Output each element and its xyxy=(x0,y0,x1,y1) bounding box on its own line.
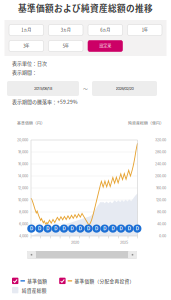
staticText: 2020 xyxy=(71,240,79,245)
staticText: 4,000 xyxy=(19,234,28,238)
staticText: 1年 xyxy=(142,27,148,33)
button[interactable]: 2015/06/18 xyxy=(7,81,79,96)
staticText: 表示単位：日次 xyxy=(12,59,47,67)
staticText: D xyxy=(46,226,49,231)
staticText: 14,000 xyxy=(18,174,28,178)
staticText: 3ヵ月 xyxy=(61,27,71,33)
button[interactable]: 1ヵ月 xyxy=(9,24,43,35)
button[interactable]: 3年 xyxy=(9,40,43,51)
staticText: 10,000 xyxy=(18,198,28,202)
staticText: 0.00 xyxy=(159,234,166,238)
button[interactable]: 基準価額 xyxy=(12,277,47,284)
staticText: 240.00 xyxy=(155,162,166,166)
staticText: 120.00 xyxy=(156,198,166,202)
staticText: D xyxy=(62,226,65,231)
staticText: 基準価額 xyxy=(27,277,47,284)
button[interactable]: Range start xyxy=(27,251,36,258)
staticText: 純資産総額 xyxy=(22,287,47,294)
staticText: 基準価額および純資産総額の推移 xyxy=(18,2,153,14)
staticText: 表示期間： xyxy=(12,68,37,76)
staticText: 5年 xyxy=(63,43,69,49)
button[interactable]: 1年 xyxy=(127,24,162,35)
button[interactable]: 5年 xyxy=(48,40,83,51)
staticText: 320.00 xyxy=(155,138,166,142)
staticText: 200.00 xyxy=(155,174,166,178)
staticText: D xyxy=(103,226,106,231)
staticText: D xyxy=(79,226,82,231)
staticText: 2026/02/20 xyxy=(115,86,133,91)
staticText: 基準価額（分配金再投資） xyxy=(74,277,134,284)
staticText: D xyxy=(30,226,33,231)
button[interactable]: 2026/02/20 xyxy=(92,81,157,96)
staticText: 6,000 xyxy=(19,222,28,226)
staticText: 3年 xyxy=(23,43,29,49)
button[interactable]: 6ヵ月 xyxy=(88,24,122,35)
staticText: D xyxy=(128,226,131,231)
staticText: 純資産総額（億円） xyxy=(128,120,164,126)
staticText: 16,000 xyxy=(18,162,28,166)
staticText: D xyxy=(136,226,139,231)
staticText: D xyxy=(111,226,114,231)
staticText: 6ヵ月 xyxy=(100,27,110,33)
staticText: 表示期間の騰落率：+59.29% xyxy=(12,98,78,105)
staticText: D xyxy=(54,226,57,231)
staticText: 8,000 xyxy=(19,210,28,214)
staticText: 12,000 xyxy=(18,186,28,190)
staticText: 40.00 xyxy=(157,222,166,226)
staticText: D xyxy=(38,226,41,231)
staticText: 設定来 xyxy=(99,43,111,49)
staticText: D xyxy=(119,226,122,231)
staticText: D xyxy=(95,226,98,231)
staticText: 80.00 xyxy=(157,210,166,214)
staticText: D xyxy=(87,226,90,231)
button[interactable]: 純資産総額 xyxy=(12,287,47,294)
staticText: 1ヵ月 xyxy=(21,27,31,33)
button[interactable]: 基準価額（分配金再投資） xyxy=(59,277,134,284)
staticText: 2025 xyxy=(120,240,128,245)
staticText: ～ xyxy=(83,85,88,92)
button[interactable]: 3ヵ月 xyxy=(48,24,83,35)
staticText: 160.00 xyxy=(156,186,166,190)
staticText: D xyxy=(71,226,74,231)
staticText: 280.00 xyxy=(155,150,166,154)
button[interactable]: 設定来 xyxy=(88,40,122,51)
staticText: 基準価額（円） xyxy=(17,120,45,126)
staticText: 20,000 xyxy=(17,138,28,142)
button[interactable]: Range end xyxy=(128,251,137,258)
staticText: 18,000 xyxy=(18,150,28,154)
staticText: 2015/06/18 xyxy=(34,86,52,91)
